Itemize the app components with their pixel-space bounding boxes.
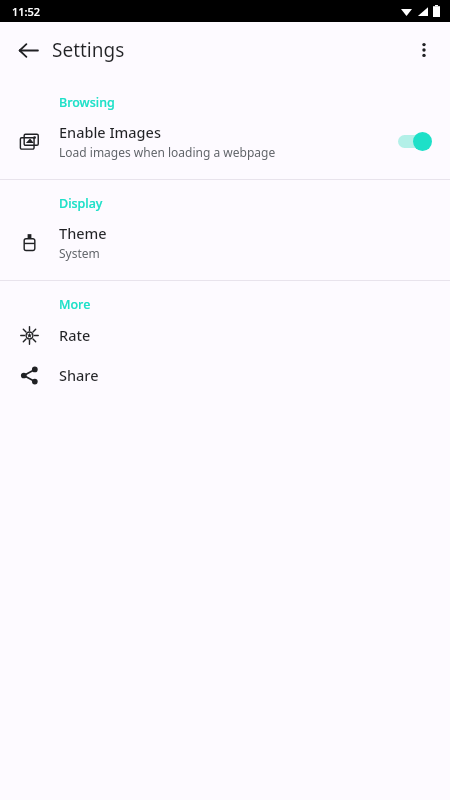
staticText: Share [59,365,99,385]
staticText: Rate [59,325,91,345]
other: Rate [0,326,59,345]
staticText: 11:52 [12,4,41,19]
staticText: Settings [52,37,125,63]
button[interactable]: More options [404,30,444,70]
staticText: System [59,245,100,261]
staticText: More [59,296,91,313]
button[interactable]: Rate [0,315,450,355]
staticText: Display [59,195,103,212]
button[interactable]: Images [0,113,450,169]
staticText: Browsing [59,94,115,111]
button[interactable]: Share [0,355,450,395]
staticText: Load images when loading a webpage [59,144,276,160]
other: Share [0,366,59,385]
staticText: Theme [59,223,107,243]
button[interactable]: Theme [0,214,450,270]
other: Theme [0,233,59,252]
button[interactable]: Back [8,30,48,70]
button[interactable]: Enable Images toggle [396,130,432,152]
staticText: Enable Images [59,122,161,142]
other: Images [0,132,59,151]
